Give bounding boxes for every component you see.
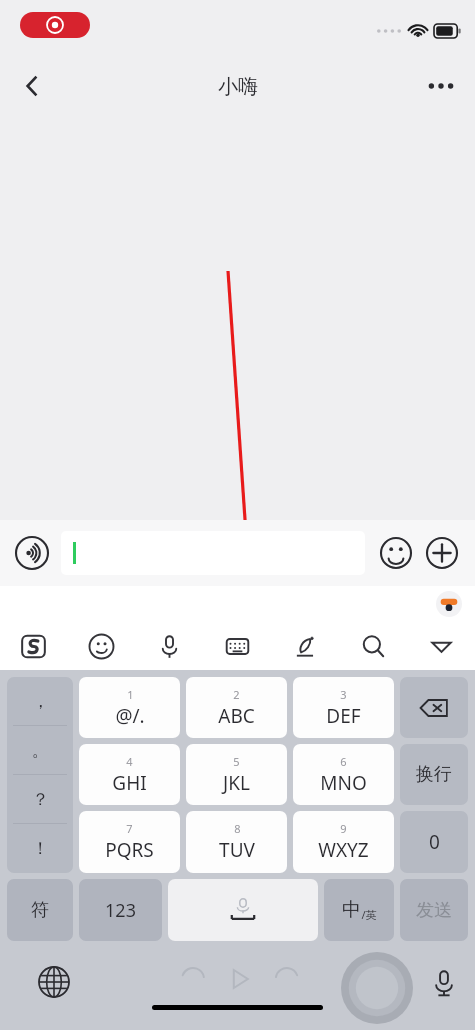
staticText: PQRS [105,837,154,863]
staticText: 123 [105,898,136,923]
button[interactable]: 1 [79,677,180,738]
staticText: 0 [429,829,440,855]
button[interactable]: Recording [20,12,90,38]
button[interactable]: 3 [293,677,394,738]
button[interactable]: 4 [79,744,180,805]
staticText: @/. [115,703,145,729]
staticText: ？ [32,789,49,810]
staticText: JKL [223,770,250,796]
button[interactable]: ， [7,677,73,873]
staticText: 中 [342,898,361,922]
staticText: 换行 [416,763,452,786]
button[interactable]: Language [36,964,72,1000]
staticText: ， [32,691,49,712]
button[interactable]: Voice input [12,533,52,573]
staticText: 7 [126,821,133,836]
button[interactable]: Search [339,622,407,670]
button[interactable]: 5 [186,744,287,805]
button[interactable] [61,531,365,575]
button[interactable]: Handwriting [271,622,339,670]
staticText: 。 [32,740,49,761]
button[interactable]: 2 [186,677,287,738]
staticText: 8 [234,821,241,836]
button[interactable]: Sogou [0,622,67,670]
button[interactable]: Assistant button [341,952,413,1024]
staticText: 符 [31,899,49,922]
button[interactable]: 9 [293,811,394,873]
staticText: 小嗨 [218,74,258,99]
button[interactable]: Emoji [375,532,417,574]
button[interactable]: Backspace [400,677,468,738]
button[interactable]: 8 [186,811,287,873]
button[interactable]: Microphone [427,966,461,1000]
staticText: MNO [320,770,367,796]
button[interactable]: 6 [293,744,394,805]
button[interactable]: Back [8,62,56,110]
staticText: ABC [218,703,255,729]
button[interactable]: 换行 [400,744,468,805]
button[interactable]: Emoji [67,622,135,670]
button[interactable]: 符 [7,879,73,941]
staticText: 2 [233,687,240,702]
staticText: DEF [326,703,361,729]
button[interactable]: Collapse [407,622,475,670]
staticText: 4 [126,754,133,769]
button[interactable]: More functions [421,532,463,574]
button[interactable]: Space [168,879,318,941]
staticText: TUV [219,837,255,863]
staticText: ！ [32,838,49,859]
button[interactable]: Chinese English switch [324,879,394,941]
staticText: 1 [127,687,134,702]
staticText: 6 [340,754,347,769]
staticText: /英 [361,907,377,922]
staticText: 3 [340,687,347,702]
staticText: 9 [340,821,347,836]
button[interactable]: 发送 [400,879,468,941]
button[interactable]: Voice [135,622,203,670]
button[interactable]: 0 [400,811,468,873]
button[interactable]: 7 [79,811,180,873]
staticText: GHI [112,770,147,796]
button[interactable]: Keyboard [203,622,271,670]
staticText: 发送 [416,899,452,922]
button[interactable]: 123 [79,879,162,941]
staticText: 5 [233,754,240,769]
button[interactable]: Assistant [435,590,463,618]
button[interactable]: More options [417,62,465,110]
staticText: WXYZ [318,837,369,863]
